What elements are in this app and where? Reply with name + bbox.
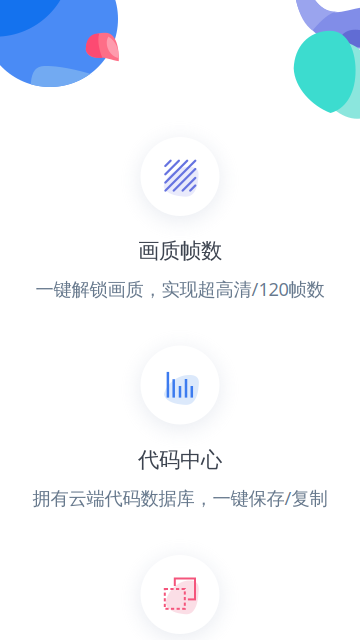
button[interactable]: 画质帧数 [140,137,219,216]
staticText: 拥有云端代码数据库，一键保存/复制 [32,486,327,510]
staticText: 代码中心 [138,447,222,473]
button[interactable]: 代码中心 [140,345,219,424]
staticText: 画质帧数 [138,238,222,264]
button[interactable]: 一键复制 [140,555,219,634]
staticText: 一键解锁画质，实现超高清/120帧数 [35,277,324,301]
